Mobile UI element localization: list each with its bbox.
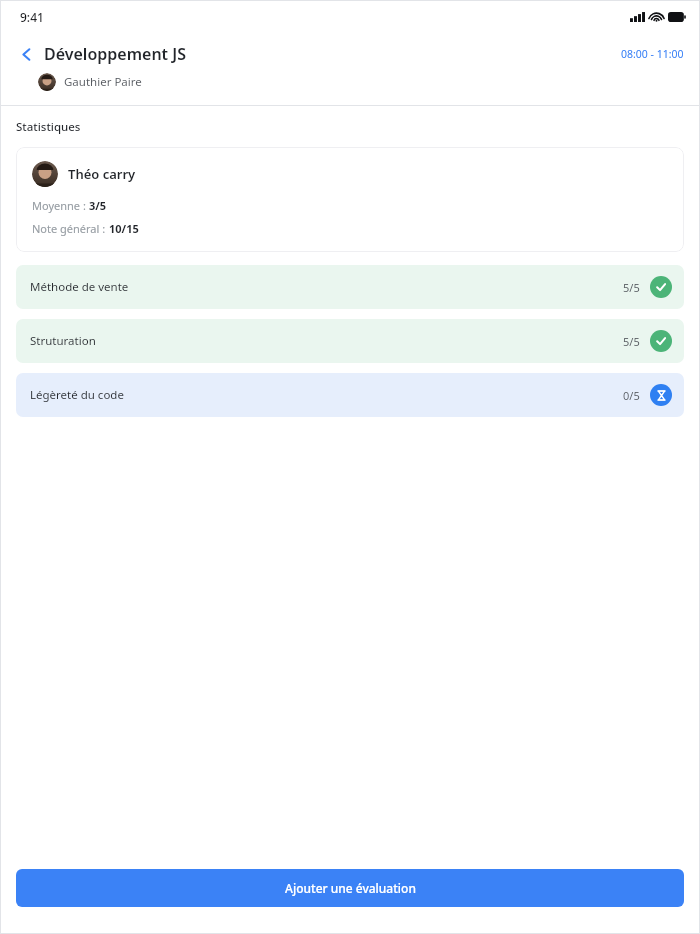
staticText: 5/5 [623, 334, 640, 349]
staticText: Méthode de vente [30, 279, 129, 295]
staticText: Struturation [30, 333, 96, 349]
button[interactable]: Théo carry [16, 147, 684, 252]
button[interactable]: Légèreté du code [16, 373, 684, 417]
staticText: Moyenne : [32, 198, 89, 213]
staticText: 5/5 [623, 280, 640, 295]
staticText: 3/5 [89, 198, 107, 213]
button[interactable]: Struturation [16, 319, 684, 363]
staticText: 9:41 [20, 9, 44, 25]
staticText: 08:00 - 11:00 [621, 47, 684, 61]
staticText: Statistiques [16, 119, 81, 135]
staticText: Théo carry [68, 165, 136, 183]
staticText: Note général : [32, 221, 109, 236]
staticText: Développement JS [44, 43, 186, 65]
staticText: 10/15 [109, 221, 139, 236]
staticText: Ajouter une évaluation [285, 880, 416, 896]
button[interactable]: Méthode de vente [16, 265, 684, 309]
staticText: Légèreté du code [30, 387, 124, 403]
button[interactable]: Ajouter une évaluation [16, 869, 684, 907]
button[interactable]: Back [14, 42, 38, 66]
staticText: 0/5 [623, 388, 640, 403]
staticText: Gauthier Paire [64, 74, 142, 90]
